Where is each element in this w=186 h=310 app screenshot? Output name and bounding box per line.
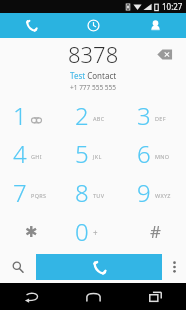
staticText: 1 bbox=[13, 99, 27, 132]
staticText: Test Contact bbox=[70, 70, 117, 81]
button[interactable]: 9 bbox=[124, 173, 186, 212]
staticText: MNO bbox=[155, 153, 170, 160]
staticText: DEF bbox=[155, 115, 166, 122]
button[interactable]: Dialpad bbox=[0, 13, 62, 38]
staticText: 0 bbox=[75, 215, 89, 248]
button[interactable]: More options bbox=[162, 251, 186, 283]
button[interactable]: 7 bbox=[0, 173, 62, 212]
button[interactable]: Call bbox=[36, 254, 162, 280]
button[interactable]: Contacts bbox=[124, 13, 186, 38]
button[interactable]: 3 bbox=[124, 96, 186, 134]
staticText: 6 bbox=[137, 137, 151, 170]
staticText: GHI bbox=[31, 153, 42, 160]
staticText: 10:27 bbox=[162, 1, 183, 12]
staticText: ABC bbox=[93, 115, 105, 122]
staticText: +1 777 555 555 bbox=[70, 83, 116, 92]
button[interactable]: Backspace bbox=[152, 42, 178, 66]
staticText: JKL bbox=[93, 153, 102, 160]
button[interactable]: Search bbox=[0, 251, 36, 283]
button[interactable]: 1 bbox=[0, 96, 62, 134]
button[interactable]: 8 bbox=[62, 173, 124, 212]
staticText: 8378 bbox=[68, 39, 119, 69]
staticText: 9 bbox=[137, 176, 151, 209]
staticText: TUV bbox=[93, 192, 105, 199]
staticText: 7 bbox=[13, 176, 27, 209]
button[interactable]: 5 bbox=[62, 134, 124, 173]
button[interactable]: Home bbox=[62, 283, 124, 310]
staticText: 8 bbox=[75, 176, 89, 209]
button[interactable]: 4 bbox=[0, 134, 62, 173]
button[interactable]: ✱ bbox=[0, 212, 62, 251]
staticText: 2 bbox=[75, 99, 89, 132]
button[interactable]: Call history bbox=[62, 13, 124, 38]
staticText: 5 bbox=[75, 137, 89, 170]
button[interactable]: 0 bbox=[62, 212, 124, 251]
staticText: + bbox=[93, 227, 98, 238]
staticText: 4 bbox=[13, 137, 27, 170]
staticText: PQRS bbox=[31, 192, 47, 199]
button[interactable]: 2 bbox=[62, 96, 124, 134]
button[interactable]: 6 bbox=[124, 134, 186, 173]
button[interactable]: Back bbox=[0, 283, 62, 310]
staticText: # bbox=[150, 220, 161, 243]
staticText: ✱ bbox=[25, 223, 38, 240]
staticText: 3 bbox=[137, 99, 151, 132]
button[interactable]: Recent apps bbox=[124, 283, 186, 310]
button[interactable]: Test Contact bbox=[0, 70, 186, 92]
button[interactable]: # bbox=[124, 212, 186, 251]
staticText: WXYZ bbox=[155, 192, 171, 199]
